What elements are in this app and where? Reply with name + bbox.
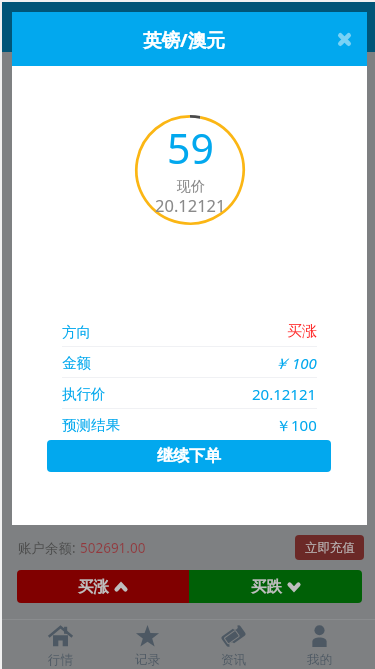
button[interactable]: Close	[331, 26, 357, 52]
button[interactable]: 资讯	[190, 625, 276, 669]
staticText: 买涨	[287, 322, 317, 341]
button[interactable]: 继续下单	[47, 440, 331, 472]
staticText: 记录	[135, 652, 160, 668]
staticText: 59	[167, 120, 214, 176]
staticText: 执行价	[62, 385, 106, 403]
staticText: 我的	[307, 652, 332, 668]
staticText: 金额	[62, 354, 91, 372]
staticText: 继续下单	[157, 446, 221, 466]
button[interactable]: 行情	[17, 625, 104, 669]
staticText: 方向	[62, 323, 91, 341]
staticText: 预测结果	[62, 416, 120, 434]
button[interactable]: 买跌	[189, 570, 362, 603]
staticText: 账户余额:	[18, 539, 80, 557]
button[interactable]: 记录	[104, 625, 190, 669]
staticText: 20.12121	[155, 194, 226, 216]
staticText: 买跌	[251, 577, 282, 597]
staticText: 立即充值	[305, 540, 355, 556]
staticText: 502691.00	[80, 539, 146, 557]
staticText: 英镑/澳元	[143, 27, 225, 52]
staticText: 20.12121	[252, 384, 317, 404]
button[interactable]: 我的	[276, 625, 362, 669]
button[interactable]: 买涨	[17, 570, 189, 603]
staticText: 行情	[48, 652, 73, 668]
staticText: 现价	[177, 178, 205, 196]
staticText: 资讯	[221, 652, 246, 668]
button[interactable]: 立即充值	[295, 535, 364, 560]
staticText: ￥100	[276, 415, 317, 435]
staticText: ￥ 100	[273, 353, 317, 373]
staticText: 买涨	[78, 577, 109, 597]
